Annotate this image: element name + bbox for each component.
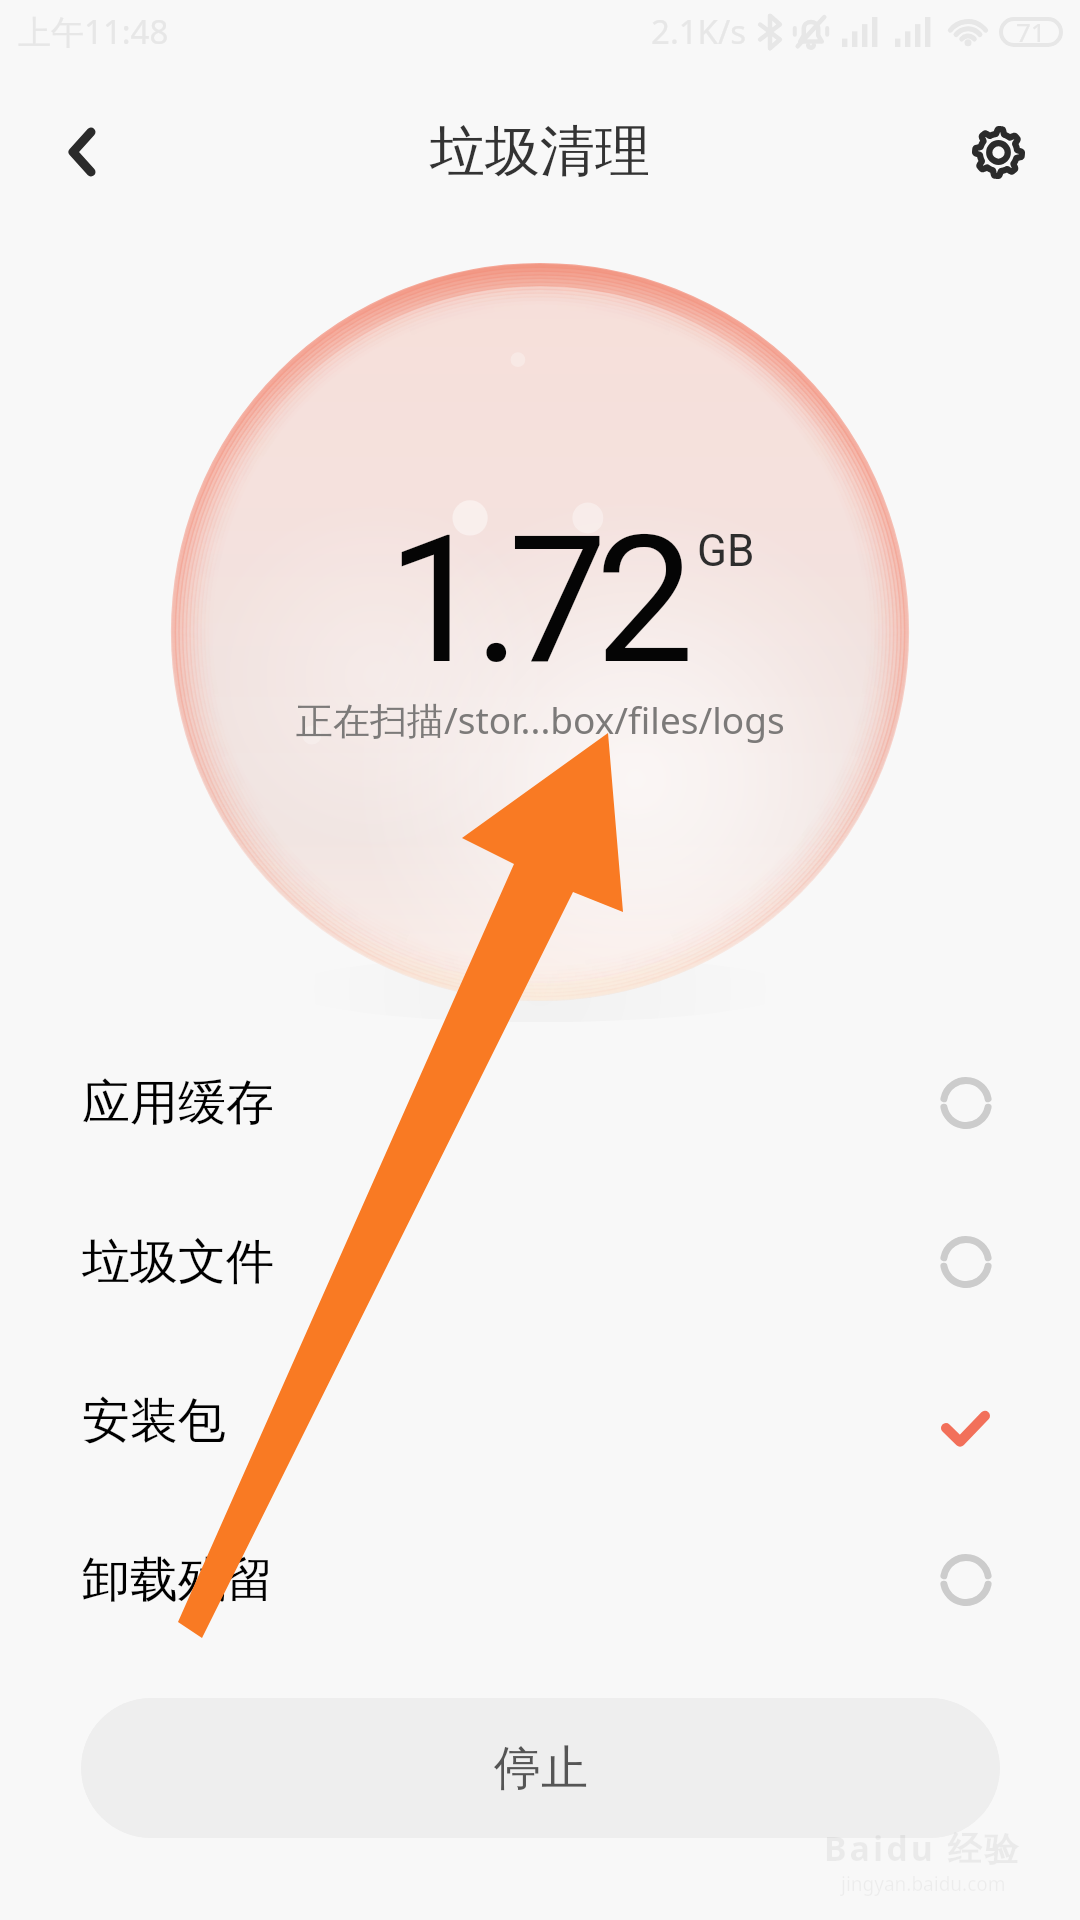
staticText: jingyan.baidu.com [841, 1871, 1006, 1897]
staticText: 垃圾清理 [430, 117, 650, 186]
staticText: 安装包 [82, 1391, 226, 1451]
staticText: 停止 [494, 1739, 588, 1798]
button[interactable]: 停止 [81, 1698, 1000, 1838]
button[interactable]: Settings [952, 106, 1044, 198]
staticText: Baidu 经验 [824, 1825, 1022, 1871]
staticText: 上午11:48 [18, 9, 169, 54]
staticText: 2.1K/s [651, 9, 747, 54]
staticText: 应用缓存 [82, 1073, 274, 1133]
staticText: 71 [1016, 14, 1046, 49]
staticText: 1.72 [387, 498, 683, 704]
button[interactable]: 安装包 [0, 1341, 1080, 1500]
button[interactable]: 垃圾文件 [0, 1182, 1080, 1341]
button[interactable]: Back [36, 106, 128, 198]
button[interactable]: 卸载残留 [0, 1500, 1080, 1659]
staticText: 卸载残留 [82, 1550, 274, 1610]
staticText: GB [697, 525, 755, 577]
staticText: 垃圾文件 [82, 1232, 274, 1292]
button[interactable]: 应用缓存 [0, 1023, 1080, 1182]
staticText: 正在扫描/stor...box/files/logs [296, 694, 785, 745]
